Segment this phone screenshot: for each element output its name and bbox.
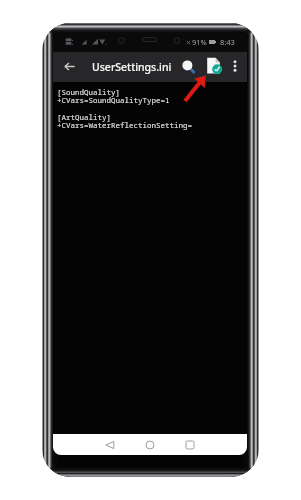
- button[interactable]: Back: [58, 55, 80, 77]
- button[interactable]: Save: [203, 55, 225, 77]
- button[interactable]: Recents: [175, 435, 204, 454]
- staticText: UserSettings.ini: [92, 60, 172, 74]
- staticText: 91%: [192, 37, 207, 47]
- button[interactable]: More options: [225, 56, 245, 76]
- staticText: +CVars=SoundQualityType=1: [57, 95, 170, 105]
- button[interactable]: Back: [95, 435, 124, 454]
- staticText: 8:43: [220, 37, 235, 47]
- staticText: +CVars=WaterReflectionSetting=: [57, 120, 192, 130]
- staticText: [ArtQuality]: [57, 112, 111, 122]
- staticText: [SoundQuality]: [57, 87, 120, 97]
- button[interactable]: Home: [135, 435, 164, 454]
- button[interactable]: Search: [178, 56, 200, 78]
